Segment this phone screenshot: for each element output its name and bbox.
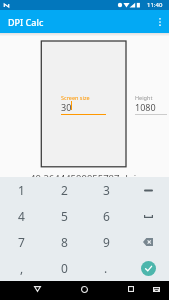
button[interactable]: 1 [0, 177, 43, 203]
button[interactable]: Done [127, 255, 169, 281]
staticText: 5 [61, 208, 68, 224]
button[interactable]: 0 [43, 255, 85, 281]
button[interactable]: Backspace [127, 229, 169, 255]
staticText: 3 [103, 182, 110, 198]
staticText: 40.26444599955787 dpi [30, 172, 137, 185]
staticText: 9 [103, 234, 110, 250]
button[interactable]: 9 [85, 229, 127, 255]
button[interactable]: DPI Calc [0, 10, 169, 33]
button[interactable]: 4 [0, 203, 43, 229]
button[interactable]: Minus [127, 177, 169, 203]
button[interactable]: More options [151, 10, 169, 33]
staticText: 8 [61, 234, 68, 250]
staticText: 11:40 [147, 1, 163, 9]
button[interactable]: 2 [43, 177, 85, 203]
button[interactable]: 7 [0, 229, 43, 255]
staticText: 30 [61, 101, 72, 113]
staticText: . [104, 260, 108, 276]
staticText: 1080 [135, 101, 156, 113]
staticText: 1 [18, 182, 25, 198]
button[interactable]: Back [29, 281, 45, 297]
button[interactable]: Recent apps [123, 281, 139, 297]
button[interactable]: 5 [43, 203, 85, 229]
button[interactable]: Home [76, 281, 92, 297]
staticText: Height [135, 94, 153, 101]
button[interactable]: 6 [85, 203, 127, 229]
staticText: 2 [61, 182, 68, 198]
staticText: 0 [61, 260, 68, 276]
staticText: 4 [18, 208, 25, 224]
staticText: 6 [103, 208, 110, 224]
button[interactable]: . [85, 255, 127, 281]
staticText: Screen size [61, 94, 90, 101]
staticText: 7 [18, 234, 25, 250]
button[interactable]: Space [127, 203, 169, 229]
staticText: , [20, 260, 24, 276]
button[interactable]: Height [135, 94, 167, 106]
button[interactable]: 8 [43, 229, 85, 255]
button[interactable]: 3 [85, 177, 127, 203]
staticText: DPI Calc [8, 16, 44, 28]
button[interactable]: Screen size [61, 94, 106, 106]
button[interactable]: Switch keyboard [148, 281, 164, 297]
button[interactable]: , [0, 255, 43, 281]
